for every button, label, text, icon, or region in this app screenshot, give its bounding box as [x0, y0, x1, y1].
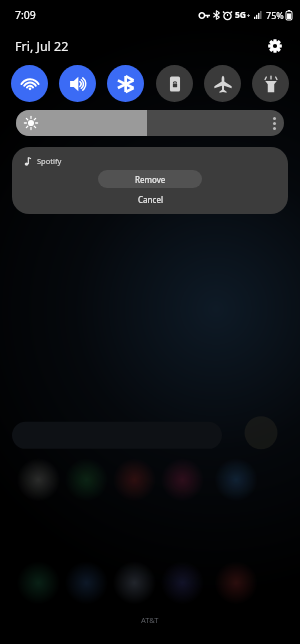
- button[interactable]: Flashlight: [252, 65, 289, 102]
- button[interactable]: Settings: [262, 33, 288, 59]
- staticText: Cancel: [138, 194, 163, 205]
- button[interactable]: Auto rotate: [156, 65, 193, 102]
- staticText: 5G: [235, 9, 247, 21]
- button[interactable]: Bluetooth: [107, 65, 144, 102]
- staticText: +: [247, 12, 251, 19]
- button[interactable]: Airplane mode: [204, 65, 241, 102]
- button[interactable]: Cancel: [98, 191, 202, 207]
- staticText: 7:09: [15, 8, 36, 22]
- button[interactable]: Remove: [98, 170, 202, 188]
- button[interactable]: Wi-Fi: [11, 65, 48, 102]
- button[interactable]: Sound: [59, 65, 96, 102]
- staticText: Remove: [135, 174, 166, 185]
- staticText: Fri, Jul 22: [15, 38, 69, 55]
- staticText: 75%: [266, 9, 284, 21]
- staticText: Spotify: [37, 156, 62, 166]
- button[interactable]: Brightness: [16, 110, 284, 136]
- staticText: AT&T: [141, 615, 159, 625]
